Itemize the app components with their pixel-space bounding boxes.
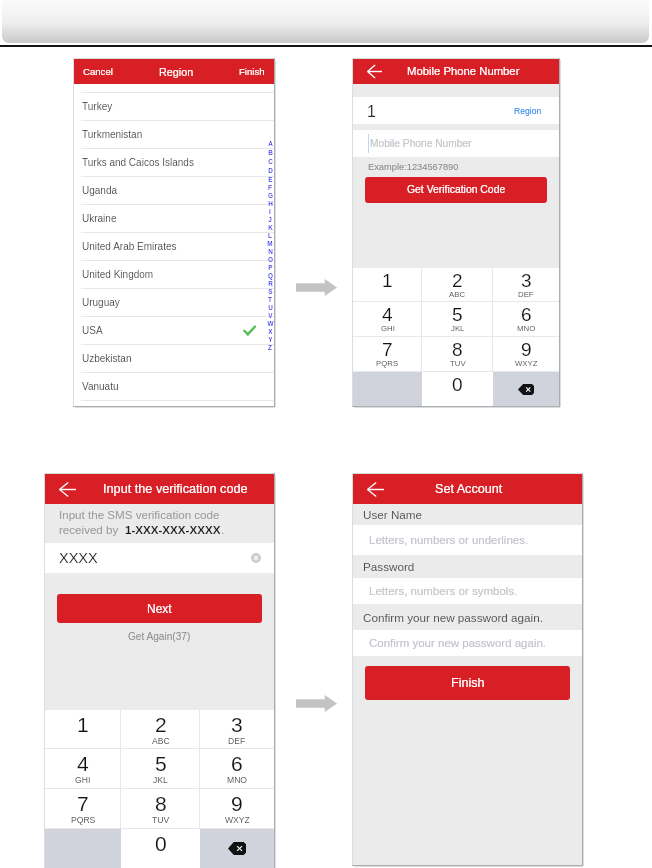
button[interactable]: Uruguay <box>74 289 274 316</box>
staticText: Region <box>514 106 542 116</box>
staticText: Get Again(37) <box>128 631 191 642</box>
button[interactable]: Letters, numbers or underlines. <box>353 525 582 555</box>
button[interactable]: 3 <box>493 268 559 301</box>
staticText: 9 <box>231 792 243 815</box>
button[interactable]: Finish <box>233 59 274 84</box>
staticText: Input the SMS verification code <box>59 508 220 521</box>
button[interactable]: Backspace <box>200 829 274 868</box>
staticText: 1 <box>77 713 89 736</box>
staticText: Get Verification Code <box>407 184 506 196</box>
button[interactable]: United Kingdom <box>74 261 274 288</box>
button[interactable]: 5 <box>422 302 493 336</box>
button[interactable]: Back <box>363 478 388 500</box>
button[interactable]: 4 <box>45 749 121 788</box>
staticText: GHI <box>381 324 395 333</box>
staticText: D <box>268 167 273 174</box>
staticText: 1 <box>382 270 393 291</box>
staticText: Turkmenistan <box>82 129 143 140</box>
button[interactable]: Vanuatu <box>74 373 274 400</box>
staticText: MNO <box>227 775 248 785</box>
staticText: 2 <box>452 270 463 291</box>
button[interactable]: Turkey <box>74 93 274 120</box>
button[interactable]: Clear text <box>251 553 261 563</box>
staticText: R <box>268 280 273 287</box>
staticText: Finish <box>451 676 485 690</box>
staticText: Input the verification code <box>103 482 248 496</box>
staticText: 5 <box>155 752 167 775</box>
staticText: Vanuatu <box>82 381 119 392</box>
button[interactable]: 8 <box>121 789 200 828</box>
button[interactable]: 6 <box>493 302 559 336</box>
button[interactable]: Uzbekistan <box>74 345 274 372</box>
staticText: 9 <box>521 339 532 360</box>
staticText: E <box>268 176 273 183</box>
button[interactable]: 1 <box>45 710 121 748</box>
button[interactable]: 8 <box>422 337 493 371</box>
button[interactable]: 1 <box>353 268 422 301</box>
staticText: 0 <box>452 374 463 395</box>
button[interactable]: Backspace <box>493 372 559 406</box>
button[interactable]: 2 <box>121 710 200 748</box>
button[interactable]: Letters, numbers or symbols. <box>353 578 582 604</box>
button[interactable]: Finish <box>365 666 570 700</box>
staticText: Cancel <box>83 66 113 77</box>
staticText: 8 <box>452 339 463 360</box>
button[interactable]: Get Verification Code <box>365 177 547 203</box>
staticText: 7 <box>382 339 393 360</box>
staticText: 6 <box>231 752 243 775</box>
staticText: TUV <box>152 815 170 825</box>
button[interactable]: 1 <box>353 97 559 124</box>
staticText: Confirm your new password again. <box>369 637 547 650</box>
staticText: ABC <box>152 736 170 746</box>
button[interactable]: 0 <box>422 372 493 406</box>
button[interactable]: 6 <box>200 749 274 788</box>
button[interactable]: USA <box>74 317 274 344</box>
staticText: Letters, numbers or underlines. <box>369 534 529 547</box>
button[interactable]: 7 <box>353 337 422 371</box>
button[interactable]: Uganda <box>74 177 274 204</box>
staticText: GHI <box>75 775 91 785</box>
staticText: Mobile Phone Number <box>370 138 472 149</box>
staticText: 3 <box>231 713 243 736</box>
button[interactable]: Turkmenistan <box>74 121 274 148</box>
button[interactable]: 5 <box>121 749 200 788</box>
button[interactable]: 0 <box>121 829 200 868</box>
staticText: Region <box>159 66 194 78</box>
button[interactable]: 9 <box>493 337 559 371</box>
button[interactable]: 2 <box>422 268 493 301</box>
button[interactable]: United Arab Emirates <box>74 233 274 260</box>
staticText: XXXX <box>59 550 98 566</box>
staticText: 3 <box>521 270 532 291</box>
button[interactable]: Back <box>363 61 386 82</box>
staticText: . <box>221 523 225 536</box>
button[interactable]: Cancel <box>74 59 119 84</box>
staticText: Uruguay <box>82 297 120 308</box>
staticText: 5 <box>452 304 463 325</box>
button[interactable]: 3 <box>200 710 274 748</box>
button[interactable]: Confirm your new password again. <box>353 630 582 656</box>
staticText: W <box>267 320 274 327</box>
staticText: DEF <box>518 290 534 299</box>
button[interactable]: 7 <box>45 789 121 828</box>
staticText: I <box>269 208 271 215</box>
button[interactable]: Get Again(37) <box>45 631 274 642</box>
staticText: Password <box>363 560 415 573</box>
staticText: 1-XXX-XXX-XXXX <box>125 523 221 536</box>
staticText: Finish <box>239 66 265 77</box>
staticText: V <box>268 312 273 319</box>
button[interactable]: 4 <box>353 302 422 336</box>
staticText: H <box>268 200 273 207</box>
button[interactable]: 9 <box>200 789 274 828</box>
staticText: F <box>268 184 272 191</box>
staticText: User Name <box>363 508 423 521</box>
button[interactable]: Turks and Caicos Islands <box>74 149 274 176</box>
button[interactable]: Next <box>57 594 262 623</box>
staticText: O <box>268 256 273 263</box>
staticText: Z <box>268 344 272 351</box>
staticText: Ukraine <box>82 213 117 224</box>
button[interactable]: Ukraine <box>74 205 274 232</box>
button[interactable]: Back <box>55 478 80 500</box>
staticText: 0 <box>155 832 167 855</box>
